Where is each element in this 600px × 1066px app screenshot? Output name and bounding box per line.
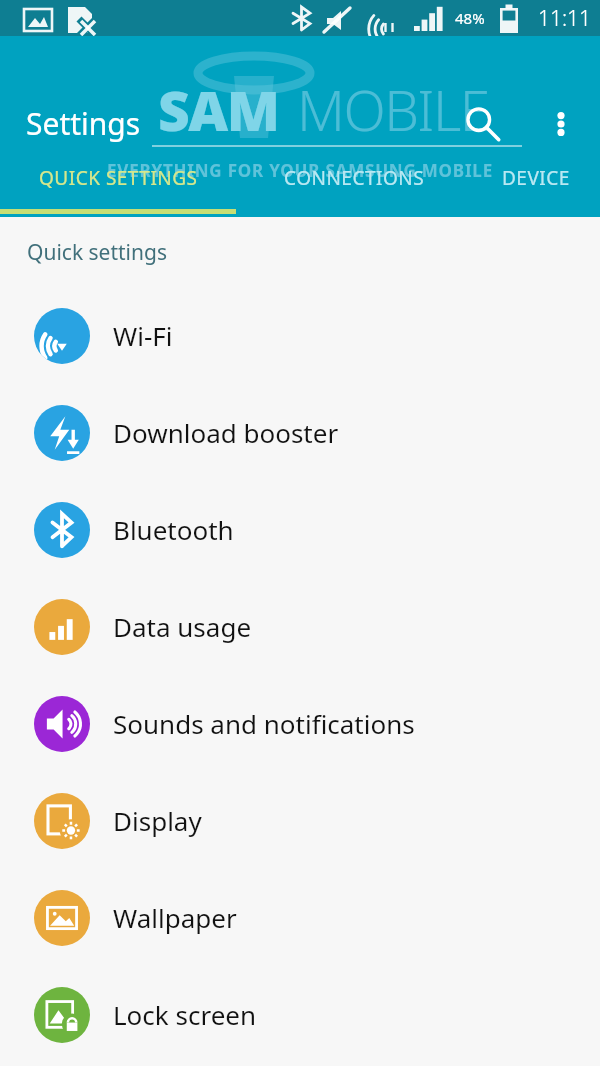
staticText: EVERYTHING FOR YOUR SAMSUNG MOBILE <box>0 159 600 182</box>
staticText: CONNECTIONS <box>284 165 425 191</box>
staticText: Quick settings <box>27 238 167 267</box>
staticText: Display <box>113 803 202 838</box>
button[interactable]: Display <box>0 772 600 869</box>
staticText: SAM <box>158 72 279 147</box>
staticText: DEVICE <box>502 165 570 191</box>
button[interactable]: QUICK SETTINGS <box>0 153 236 217</box>
staticText: Download booster <box>113 415 339 450</box>
staticText: Wi-Fi <box>113 318 173 353</box>
button[interactable]: CONNECTIONS <box>236 153 472 217</box>
button[interactable]: Wi-Fi <box>0 287 600 384</box>
staticText: Bluetooth <box>113 512 234 547</box>
button[interactable]: Bluetooth <box>0 481 600 578</box>
button[interactable]: Search <box>454 96 510 152</box>
staticText: 48% <box>455 8 485 28</box>
button[interactable]: Download booster <box>0 384 600 481</box>
button[interactable]: DEVICE <box>472 153 600 217</box>
staticText: MOBILE <box>297 72 489 147</box>
staticText: Data usage <box>113 609 252 644</box>
button[interactable]: Sounds and notifications <box>0 675 600 772</box>
staticText: Lock screen <box>113 997 257 1032</box>
button[interactable]: Data usage <box>0 578 600 675</box>
button[interactable]: Wallpaper <box>0 869 600 966</box>
staticText: Sounds and notifications <box>113 706 415 741</box>
staticText: QUICK SETTINGS <box>39 165 198 191</box>
staticText: Settings <box>26 103 141 144</box>
staticText: 11:11 <box>538 4 592 33</box>
staticText: Wallpaper <box>113 900 237 935</box>
button[interactable]: Lock screen <box>0 966 600 1063</box>
button[interactable]: More options <box>533 96 589 152</box>
